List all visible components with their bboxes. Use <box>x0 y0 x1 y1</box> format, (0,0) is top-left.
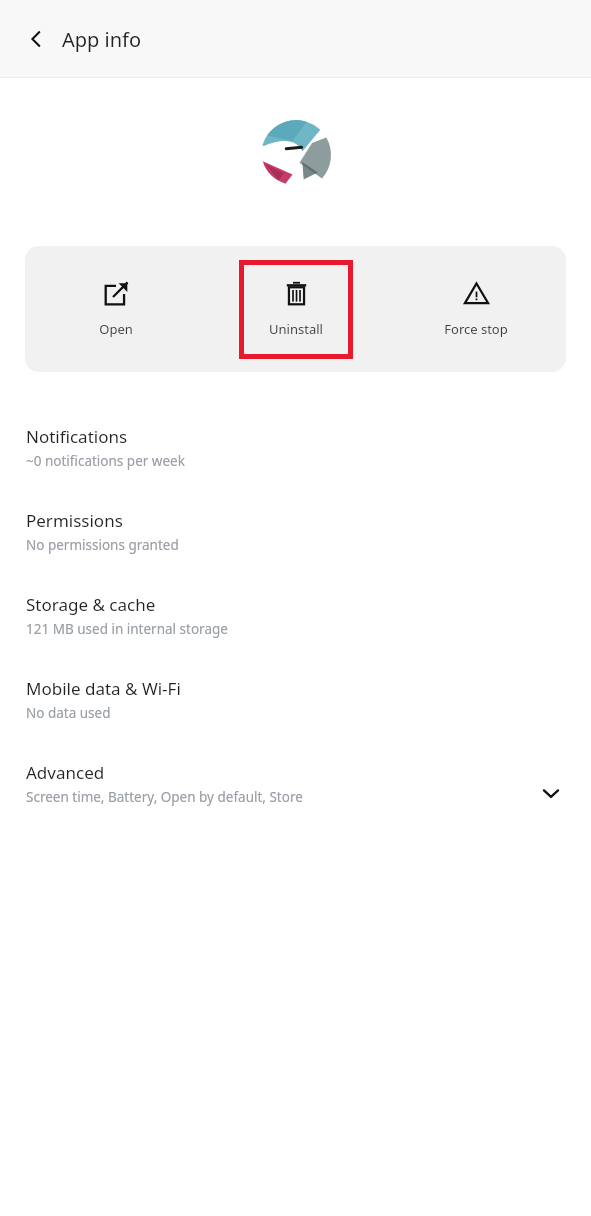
button[interactable]: Force stop <box>386 246 566 372</box>
staticText: No data used <box>26 704 111 722</box>
staticText: Mobile data & Wi-Fi <box>26 677 181 700</box>
button[interactable]: Mobile data & Wi-Fi <box>0 657 591 741</box>
staticText: Uninstall <box>269 320 323 338</box>
staticText: 121 MB used in internal storage <box>26 620 228 638</box>
button[interactable]: Storage & cache <box>0 573 591 657</box>
staticText: No permissions granted <box>26 536 179 554</box>
staticText: Permissions <box>26 509 123 532</box>
button[interactable]: Notifications <box>0 405 591 489</box>
staticText: Notifications <box>26 425 128 448</box>
staticText: Storage & cache <box>26 593 156 616</box>
button[interactable]: Uninstall <box>206 246 386 372</box>
staticText: ~0 notifications per week <box>26 452 185 470</box>
button[interactable]: Advanced <box>0 741 591 825</box>
button[interactable]: Open <box>25 246 206 372</box>
other: Expand <box>537 779 565 807</box>
staticText: Screen time, Battery, Open by default, S… <box>26 788 303 806</box>
staticText: Advanced <box>26 761 105 784</box>
staticText: App info <box>62 26 142 53</box>
button[interactable]: Back <box>14 17 58 61</box>
staticText: Force stop <box>444 320 508 338</box>
staticText: Open <box>99 320 133 338</box>
button[interactable]: Permissions <box>0 489 591 573</box>
